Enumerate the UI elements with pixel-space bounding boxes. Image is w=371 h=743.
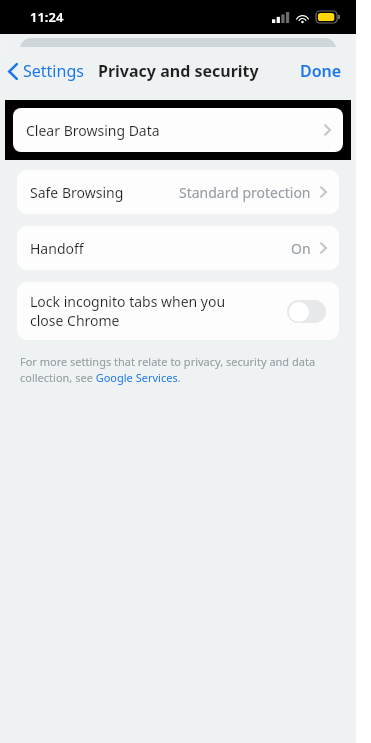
staticText: 11:24 xyxy=(30,8,64,26)
staticText: Handoff xyxy=(30,239,84,258)
button[interactable]: Lock incognito tabs toggle xyxy=(287,300,326,323)
staticText: For more settings that relate to privacy… xyxy=(20,354,336,385)
button[interactable]: Safe Browsing xyxy=(17,170,339,214)
button[interactable]: Done xyxy=(286,52,356,90)
staticText: Lock incognito tabs when you close Chrom… xyxy=(30,292,226,330)
staticText: Privacy and security xyxy=(98,60,259,82)
staticText: Settings xyxy=(23,60,84,82)
staticText: Standard protection xyxy=(179,183,311,202)
staticText: Done xyxy=(300,60,342,82)
button[interactable]: Lock incognito tabs when you close Chrom… xyxy=(17,282,339,340)
staticText: Clear Browsing Data xyxy=(26,121,160,140)
button[interactable]: Clear Browsing Data xyxy=(13,108,343,152)
button[interactable]: Settings xyxy=(0,54,92,88)
staticText: Safe Browsing xyxy=(30,183,124,202)
staticText: On xyxy=(291,239,311,258)
button[interactable]: Handoff xyxy=(17,226,339,270)
